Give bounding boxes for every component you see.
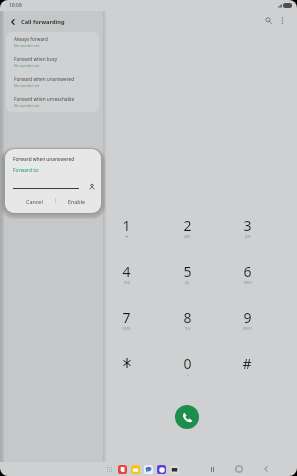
staticText: + [187, 373, 189, 377]
button[interactable]: Cancel [13, 194, 55, 208]
button[interactable]: All apps [105, 465, 114, 474]
staticText: # [242, 354, 252, 373]
button[interactable] [96, 354, 157, 398]
staticText: 3 [243, 216, 252, 235]
button[interactable]: # [217, 354, 277, 398]
staticText: Forward when unanswered [13, 156, 75, 162]
staticText: Call forwarding [21, 18, 65, 26]
button[interactable]: Open contacts [87, 182, 96, 191]
button[interactable]: 5 [157, 262, 217, 308]
button[interactable]: 0 [157, 354, 217, 398]
button[interactable]: Enable [56, 194, 98, 208]
staticText: Forward when busy [14, 56, 58, 62]
button[interactable]: App shortcut [118, 465, 127, 474]
button[interactable]: More options [275, 13, 289, 27]
button[interactable]: Call [175, 405, 199, 429]
button[interactable]: Back [259, 462, 273, 476]
button[interactable]: 3 [217, 216, 277, 262]
button[interactable]: App shortcut [131, 465, 140, 474]
staticText: Forward when unreachable [14, 96, 75, 102]
button[interactable]: Forward when unreachable [6, 92, 99, 112]
staticText: No number set [14, 103, 40, 108]
button[interactable]: Forward when busy [6, 52, 99, 72]
button[interactable]: Forward when unanswered [6, 72, 99, 92]
button[interactable]: Navigate up [7, 16, 18, 27]
button[interactable]: App shortcut [144, 465, 153, 474]
button[interactable]: 4 [96, 262, 157, 308]
staticText: 6 [243, 262, 252, 281]
button[interactable]: Search [261, 13, 275, 27]
staticText: 0 [183, 354, 192, 373]
button[interactable]: 6 [217, 262, 277, 308]
button[interactable]: 1 [96, 216, 157, 262]
staticText: 5 [183, 262, 192, 281]
button[interactable]: 2 [157, 216, 217, 262]
staticText: 10:08 [9, 2, 22, 9]
staticText: ABC [184, 235, 191, 239]
button[interactable]: Recent apps [205, 462, 219, 476]
button[interactable]: Always forward [6, 32, 99, 52]
staticText: Enable [68, 198, 86, 205]
staticText: No number set [14, 43, 40, 48]
staticText: Cancel [26, 198, 43, 205]
staticText: Forward when unanswered [14, 76, 75, 82]
staticText: 1 [122, 216, 131, 235]
button[interactable]: 8 [157, 308, 217, 354]
staticText: 7 [122, 308, 131, 327]
button[interactable]: App shortcut [170, 465, 179, 474]
button[interactable]: 9 [217, 308, 277, 354]
staticText: GHI [124, 281, 130, 285]
staticText: TUV [184, 327, 191, 331]
staticText: DEF [245, 235, 251, 239]
staticText: No number set [14, 83, 40, 88]
staticText: 9 [243, 308, 252, 327]
button[interactable]: Home [232, 462, 246, 476]
staticText: 2 [183, 216, 192, 235]
staticText: No number set [14, 63, 40, 68]
staticText: Always forward [14, 36, 48, 42]
button[interactable]: 7 [96, 308, 157, 354]
staticText: PQRS [122, 327, 131, 331]
staticText: JKL [185, 281, 190, 285]
staticText: Forward to: [13, 167, 40, 174]
staticText: WXYZ [243, 327, 252, 331]
staticText: 8 [183, 308, 192, 327]
staticText: 4 [122, 262, 131, 281]
staticText: MNO [244, 281, 252, 285]
button[interactable]: App shortcut [157, 465, 166, 474]
